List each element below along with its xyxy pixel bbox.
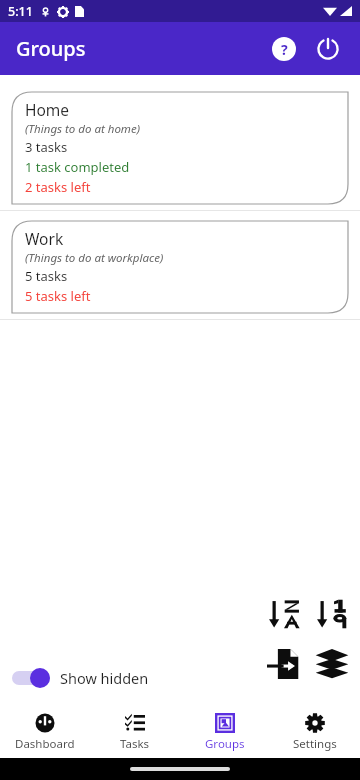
staticText: Groups — [205, 736, 245, 752]
button[interactable]: Groups — [180, 706, 270, 758]
button[interactable]: Home — [12, 92, 348, 204]
button[interactable]: Settings — [270, 706, 360, 758]
staticText: Settings — [293, 736, 337, 752]
button[interactable]: Dashboard — [0, 706, 90, 758]
staticText: 5 tasks left — [25, 287, 91, 305]
staticText: Work — [25, 228, 64, 249]
button[interactable]: Sort Z to A — [260, 590, 308, 638]
button[interactable]: Power off — [308, 29, 348, 69]
button[interactable]: Layers — [308, 640, 356, 688]
staticText: Tasks — [120, 736, 150, 752]
button[interactable]: Help — [264, 29, 304, 69]
staticText: 2 tasks left — [25, 178, 91, 196]
button[interactable]: Show hidden — [8, 662, 153, 694]
staticText: 1 task completed — [25, 158, 130, 176]
button[interactable]: Work — [12, 221, 348, 313]
staticText: ? — [281, 40, 288, 59]
button[interactable]: Import — [260, 640, 308, 688]
staticText: 3 tasks — [25, 138, 68, 156]
staticText: (Things to do at workplace) — [25, 250, 164, 266]
staticText: 5:11 — [8, 3, 33, 20]
staticText: Groups — [16, 35, 86, 62]
button[interactable]: Tasks — [90, 706, 180, 758]
button[interactable]: Sort 1 to 9 — [308, 590, 356, 638]
staticText: Dashboard — [15, 736, 75, 752]
staticText: Show hidden — [60, 668, 149, 688]
staticText: Home — [25, 99, 70, 120]
staticText: (Things to do at home) — [25, 121, 141, 137]
staticText: 5 tasks — [25, 267, 68, 285]
